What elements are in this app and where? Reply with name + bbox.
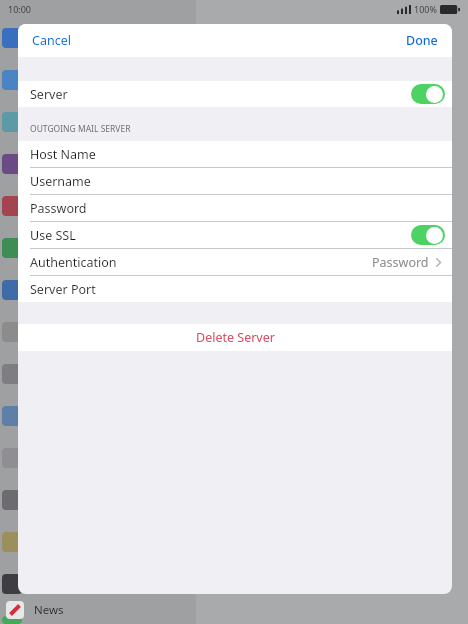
staticText: Done	[406, 32, 438, 49]
button[interactable]: Done	[392, 26, 452, 55]
staticText: 100%	[414, 3, 437, 15]
staticText: Host Name	[30, 146, 96, 163]
button[interactable]: Password	[18, 194, 452, 221]
staticText: Use SSL	[30, 227, 76, 244]
staticText: Password	[372, 254, 429, 271]
button[interactable]: Cancel	[18, 26, 85, 55]
button[interactable]: Server Port	[18, 275, 452, 302]
button[interactable]: Authentication	[18, 248, 452, 275]
staticText: Cancel	[32, 32, 71, 49]
button[interactable]: Toggle on	[411, 84, 445, 104]
staticText: News	[34, 602, 64, 618]
staticText: Server	[30, 86, 68, 103]
button[interactable]: Use SSL	[18, 221, 452, 248]
button[interactable]: Toggle on	[411, 225, 445, 245]
button[interactable]: Username	[18, 167, 452, 194]
staticText: Username	[30, 173, 91, 190]
button[interactable]: Delete Server	[18, 324, 452, 351]
staticText: OUTGOING MAIL SERVER	[30, 123, 131, 135]
staticText: Authentication	[30, 254, 117, 271]
staticText: Server Port	[30, 281, 96, 298]
staticText: 10:00	[8, 3, 32, 15]
staticText: Password	[30, 200, 87, 217]
staticText: Delete Server	[196, 329, 275, 346]
button[interactable]: Host Name	[18, 141, 452, 167]
